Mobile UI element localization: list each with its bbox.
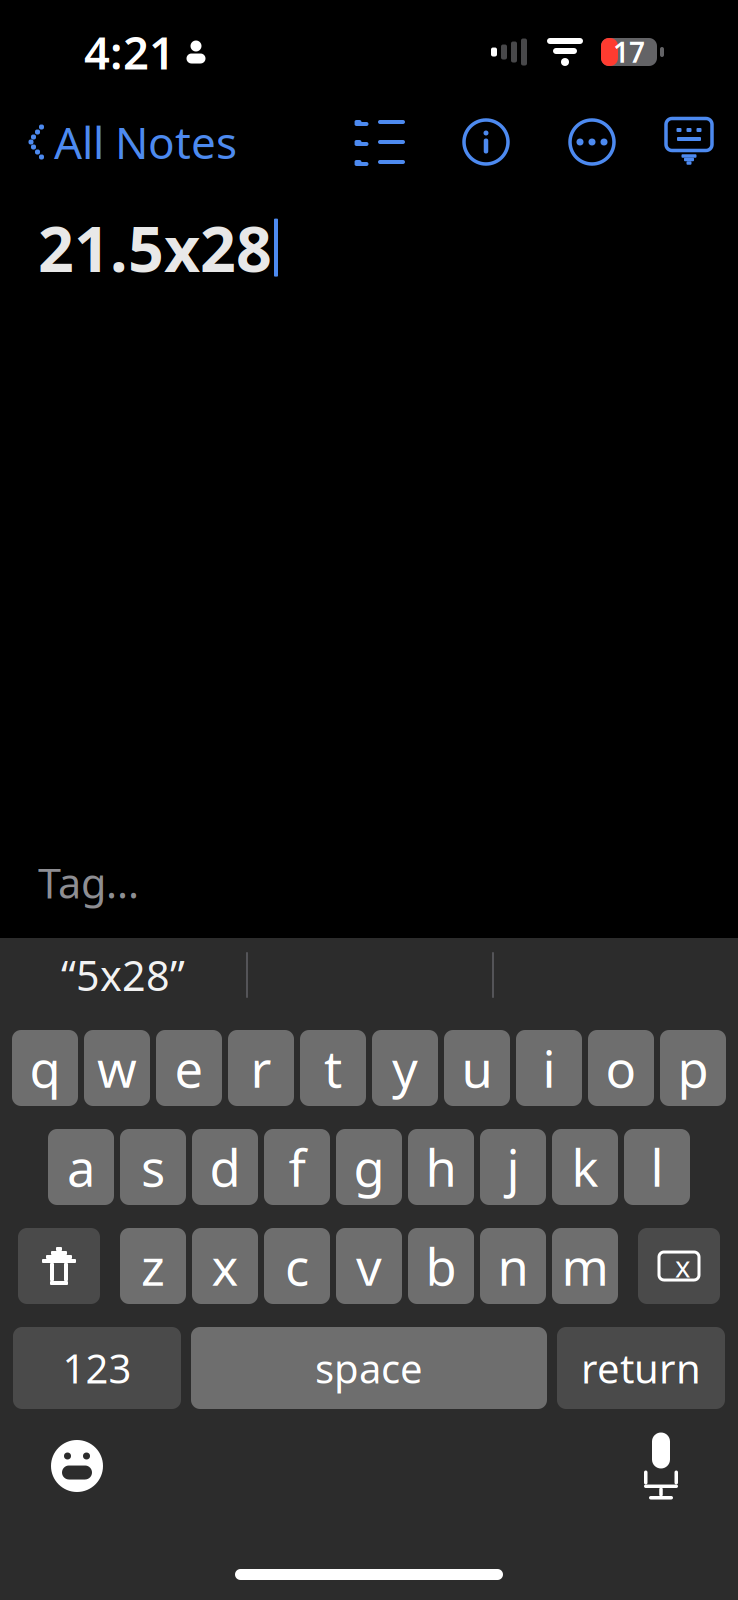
staticText: g bbox=[353, 1133, 384, 1201]
button[interactable]: x bbox=[192, 1228, 258, 1304]
staticText: s bbox=[141, 1133, 165, 1201]
staticText: q bbox=[29, 1034, 60, 1102]
button[interactable]: b bbox=[408, 1228, 474, 1304]
button[interactable]: n bbox=[480, 1228, 546, 1304]
button[interactable]: y bbox=[372, 1030, 438, 1106]
staticText: c bbox=[285, 1232, 309, 1300]
button[interactable]: c bbox=[264, 1228, 330, 1304]
button[interactable]: d bbox=[192, 1129, 258, 1205]
button[interactable]: Emoji bbox=[44, 1433, 110, 1499]
button[interactable]: k bbox=[552, 1129, 618, 1205]
staticText: j bbox=[506, 1133, 519, 1201]
button[interactable]: “5x28” bbox=[0, 938, 246, 1012]
staticText: r bbox=[250, 1034, 271, 1102]
staticText: Tag... bbox=[38, 855, 139, 910]
button[interactable]: Dictate bbox=[628, 1431, 694, 1501]
button[interactable]: w bbox=[84, 1030, 150, 1106]
button[interactable]: 123 bbox=[13, 1327, 181, 1409]
staticText: a bbox=[67, 1133, 95, 1201]
staticText: “5x28” bbox=[61, 948, 185, 1002]
staticText: k bbox=[571, 1133, 598, 1201]
button[interactable]: p bbox=[660, 1030, 726, 1106]
staticText: n bbox=[497, 1232, 528, 1300]
staticText: All Notes bbox=[54, 113, 237, 171]
staticText: m bbox=[561, 1232, 608, 1300]
staticText: b bbox=[425, 1232, 456, 1300]
staticText: p bbox=[677, 1034, 708, 1102]
button[interactable]: More bbox=[558, 108, 626, 176]
button[interactable]: f bbox=[264, 1129, 330, 1205]
button[interactable]: o bbox=[588, 1030, 654, 1106]
button[interactable]: h bbox=[408, 1129, 474, 1205]
button[interactable]: a bbox=[48, 1129, 114, 1205]
staticText: 123 bbox=[62, 1341, 131, 1394]
staticText: i bbox=[542, 1034, 555, 1102]
staticText: l bbox=[650, 1133, 663, 1201]
staticText: space bbox=[315, 1341, 423, 1394]
staticText: d bbox=[209, 1133, 240, 1201]
button[interactable]: g bbox=[336, 1129, 402, 1205]
staticText: y bbox=[392, 1034, 418, 1102]
staticText: 21.5x28 bbox=[38, 206, 272, 289]
staticText: h bbox=[425, 1133, 456, 1201]
staticText: 17 bbox=[613, 33, 645, 71]
button[interactable]: Info bbox=[452, 108, 520, 176]
button[interactable]: All Notes bbox=[0, 101, 237, 183]
button[interactable]: Checklist bbox=[340, 106, 418, 177]
button[interactable]: s bbox=[120, 1129, 186, 1205]
staticText: t bbox=[324, 1034, 342, 1102]
staticText: u bbox=[461, 1034, 492, 1102]
staticText: o bbox=[605, 1034, 636, 1102]
button[interactable]: q bbox=[12, 1030, 78, 1106]
staticText: w bbox=[97, 1034, 137, 1102]
button[interactable]: space bbox=[191, 1327, 547, 1409]
button[interactable]: z bbox=[120, 1228, 186, 1304]
button[interactable]: Shift bbox=[18, 1228, 100, 1304]
button[interactable]: t bbox=[300, 1030, 366, 1106]
staticText: e bbox=[174, 1034, 203, 1102]
button[interactable]: e bbox=[156, 1030, 222, 1106]
staticText: x bbox=[675, 1246, 691, 1285]
staticText: 4:21 bbox=[84, 22, 175, 82]
staticText: x bbox=[211, 1232, 238, 1300]
button[interactable]: u bbox=[444, 1030, 510, 1106]
button[interactable]: j bbox=[480, 1129, 546, 1205]
button[interactable]: v bbox=[336, 1228, 402, 1304]
button[interactable]: Hide Keyboard bbox=[664, 116, 738, 168]
staticText: z bbox=[141, 1232, 165, 1300]
button[interactable]: return bbox=[557, 1327, 725, 1409]
button[interactable]: i bbox=[516, 1030, 582, 1106]
button[interactable]: Delete bbox=[638, 1228, 720, 1304]
staticText: f bbox=[288, 1133, 305, 1201]
button[interactable]: m bbox=[552, 1228, 618, 1304]
staticText: return bbox=[581, 1341, 701, 1394]
button[interactable]: l bbox=[624, 1129, 690, 1205]
staticText: v bbox=[356, 1232, 382, 1300]
button[interactable]: r bbox=[228, 1030, 294, 1106]
